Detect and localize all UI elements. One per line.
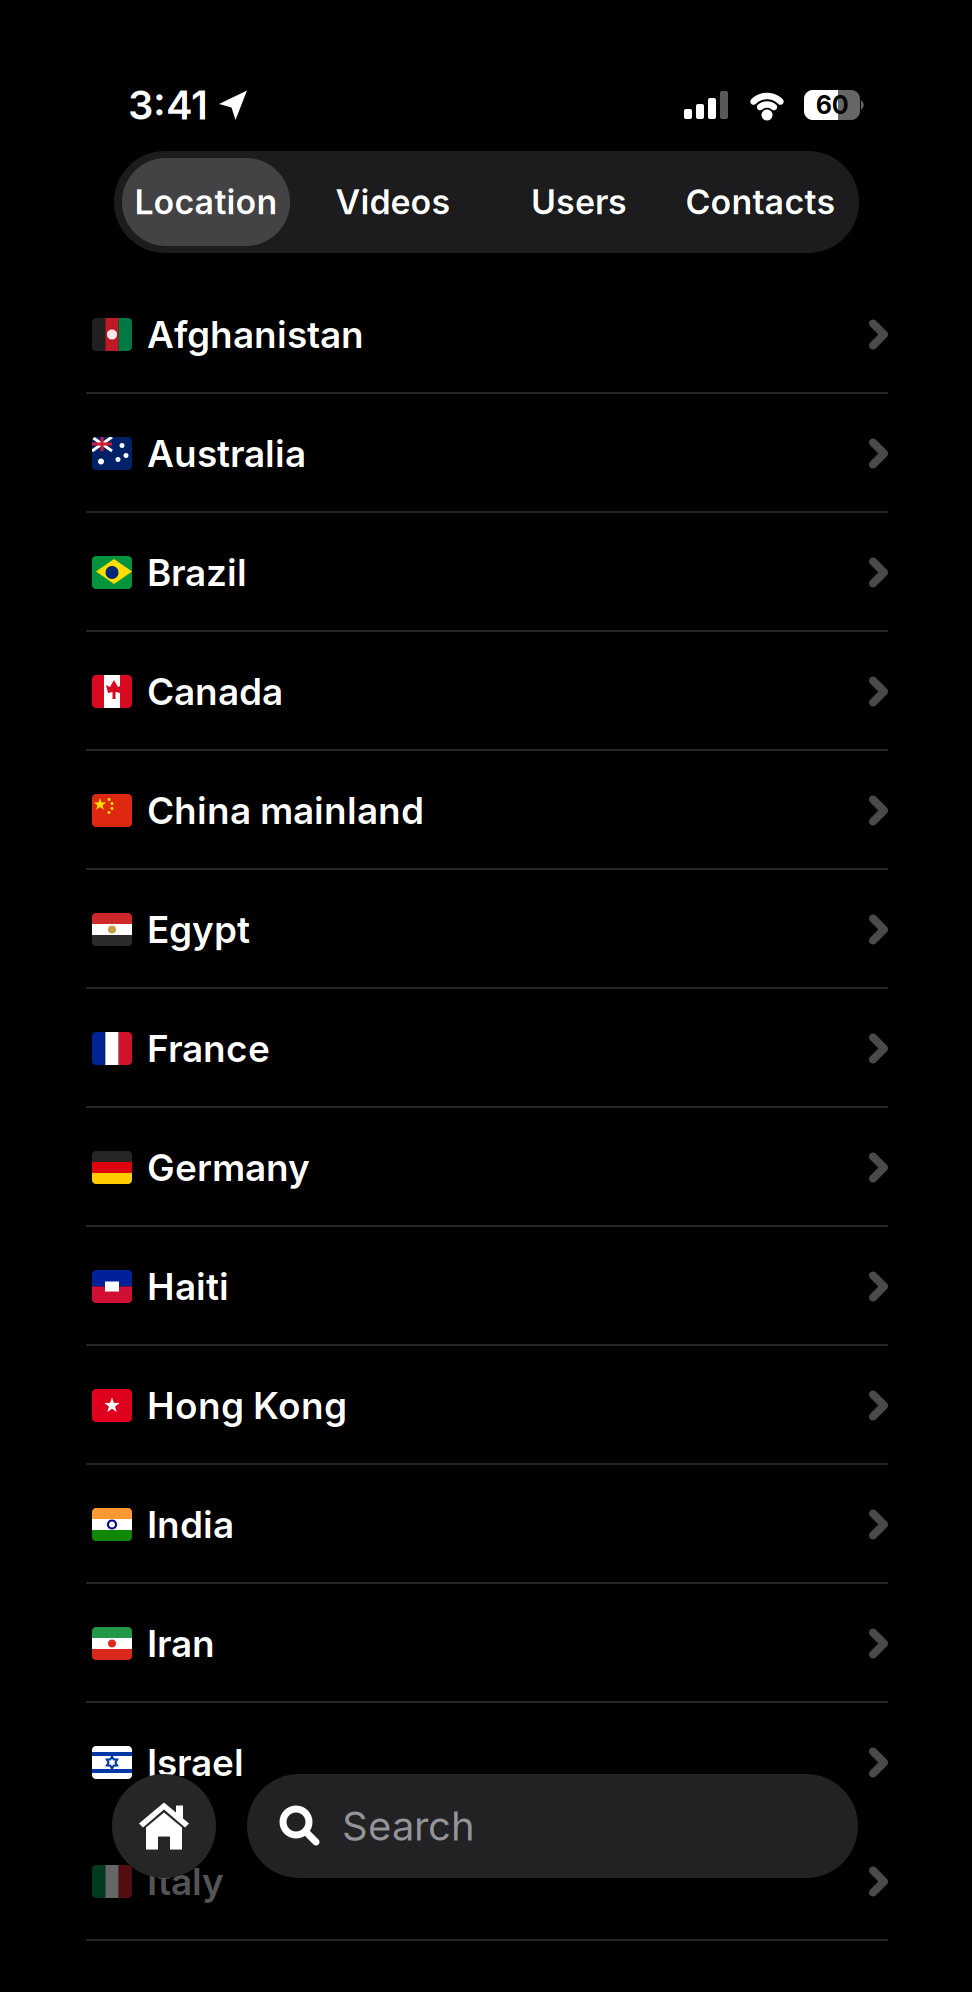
staticText: France (147, 1027, 270, 1070)
staticText: Contacts (685, 182, 835, 222)
staticText: Australia (147, 432, 306, 475)
staticText: Haiti (147, 1265, 229, 1308)
staticText: Search (342, 1802, 475, 1850)
staticText: Egypt (147, 908, 250, 951)
button[interactable]: Brazil (0, 513, 972, 632)
staticText: India (147, 1503, 234, 1546)
button[interactable]: Germany (0, 1108, 972, 1227)
button[interactable]: Hong Kong (0, 1346, 972, 1465)
staticText: 3:41 (128, 81, 208, 129)
staticText: Videos (335, 182, 450, 222)
button[interactable]: Search (247, 1774, 858, 1878)
button[interactable]: Users (496, 158, 662, 246)
button[interactable]: Afghanistan (0, 275, 972, 394)
staticText: Brazil (147, 551, 247, 594)
button[interactable]: China mainland (0, 751, 972, 870)
button[interactable]: Egypt (0, 870, 972, 989)
button[interactable]: France (0, 989, 972, 1108)
button[interactable]: Canada (0, 632, 972, 751)
staticText: Users (531, 182, 627, 222)
staticText: 60 (816, 90, 848, 120)
staticText: China mainland (147, 789, 424, 832)
button[interactable]: India (0, 1465, 972, 1584)
button[interactable]: Haiti (0, 1227, 972, 1346)
button[interactable]: Location (122, 158, 290, 246)
staticText: Location (134, 182, 277, 222)
button[interactable]: Home (112, 1774, 216, 1878)
button[interactable]: Videos (290, 158, 496, 246)
staticText: Iran (147, 1622, 215, 1665)
staticText: Germany (147, 1146, 310, 1189)
button[interactable]: Italy (0, 1822, 972, 1941)
button[interactable]: Israel (0, 1703, 972, 1822)
button[interactable]: Australia (0, 394, 972, 513)
button[interactable]: Contacts (662, 158, 859, 246)
staticText: Hong Kong (147, 1384, 347, 1427)
staticText: Canada (147, 670, 283, 713)
staticText: Italy (147, 1860, 224, 1903)
staticText: Israel (147, 1741, 244, 1784)
staticText: Afghanistan (147, 313, 364, 356)
button[interactable]: Iran (0, 1584, 972, 1703)
